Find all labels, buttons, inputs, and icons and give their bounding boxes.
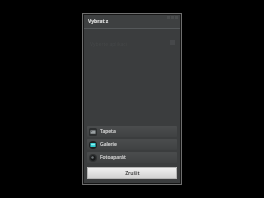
staticText: Fotoaparát	[100, 154, 126, 161]
staticText: Vybrat z	[88, 18, 109, 25]
other: Wallpaper	[89, 128, 97, 136]
staticText: Zrušit	[125, 170, 140, 177]
other: Camera	[89, 154, 97, 162]
other: Gallery	[89, 141, 97, 149]
staticText: Tapeta	[100, 128, 116, 135]
button[interactable]: Wallpaper	[87, 126, 177, 137]
staticText: Galerie	[100, 141, 117, 148]
button[interactable]: Camera	[87, 152, 177, 163]
button[interactable]: Zrušit	[87, 167, 177, 179]
button[interactable]: Gallery	[87, 139, 177, 150]
